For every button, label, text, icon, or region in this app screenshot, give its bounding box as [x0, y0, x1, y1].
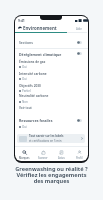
button[interactable]: Aide	[76, 26, 82, 31]
button[interactable]: Basculer	[77, 52, 82, 55]
staticText: Non	[22, 100, 28, 104]
other: Marques	[22, 150, 27, 155]
other: Actus	[59, 150, 64, 155]
button[interactable]: Environnement	[23, 25, 57, 31]
staticText: Intensité carbone	[19, 72, 47, 76]
button[interactable]: Marques	[15, 147, 34, 161]
button[interactable]: Tout savoir sur les labels	[17, 134, 85, 143]
staticText: Dérèglement climatique	[19, 52, 62, 57]
staticText: Tout savoir sur les labels	[29, 134, 64, 138]
button[interactable]: Oui	[19, 124, 27, 129]
button[interactable]: Actus	[52, 147, 70, 161]
staticText: Voir tout	[19, 106, 32, 110]
button[interactable]: Basculer	[77, 41, 82, 44]
staticText: 9:41	[18, 18, 25, 23]
button[interactable]: Basculer	[77, 119, 82, 122]
button[interactable]: Oui	[19, 64, 27, 69]
button[interactable]: Profil	[70, 147, 88, 161]
button[interactable]	[15, 58, 88, 69]
button[interactable]: Non	[19, 99, 28, 104]
staticText: et certifications en 5 min	[29, 139, 62, 143]
other: Ouvrir	[81, 137, 83, 140]
staticText: Sections	[19, 40, 33, 45]
staticText: Oui	[22, 125, 27, 129]
staticText: Émissions de gaz	[19, 60, 46, 64]
staticText: Greenwashing ou réalité ? Vérifiez les e…	[15, 165, 88, 184]
button[interactable]	[15, 70, 88, 81]
staticText: Partiel	[22, 89, 31, 93]
staticText: Ressources fossiles	[19, 118, 53, 123]
staticText: Aide	[76, 27, 82, 31]
button[interactable]: Oui	[19, 76, 27, 81]
staticText: Marques	[19, 156, 30, 159]
staticText: Scanner	[38, 156, 48, 159]
button[interactable]: Partiel	[19, 88, 31, 93]
staticText: Oui	[22, 65, 27, 69]
button[interactable]: Scanner	[34, 147, 52, 161]
button[interactable]	[15, 92, 88, 103]
staticText: Objectifs 2030	[19, 84, 41, 88]
staticText: Profil	[76, 156, 83, 159]
button[interactable]: Logo	[18, 26, 22, 30]
staticText: Oui	[22, 77, 27, 81]
staticText: Environnement	[23, 25, 57, 31]
staticText: Neutralité carbone	[19, 94, 49, 98]
staticText: Actus	[58, 156, 65, 159]
other: Scanner	[41, 150, 46, 155]
button[interactable]	[15, 82, 88, 93]
other: Profil	[77, 150, 82, 155]
